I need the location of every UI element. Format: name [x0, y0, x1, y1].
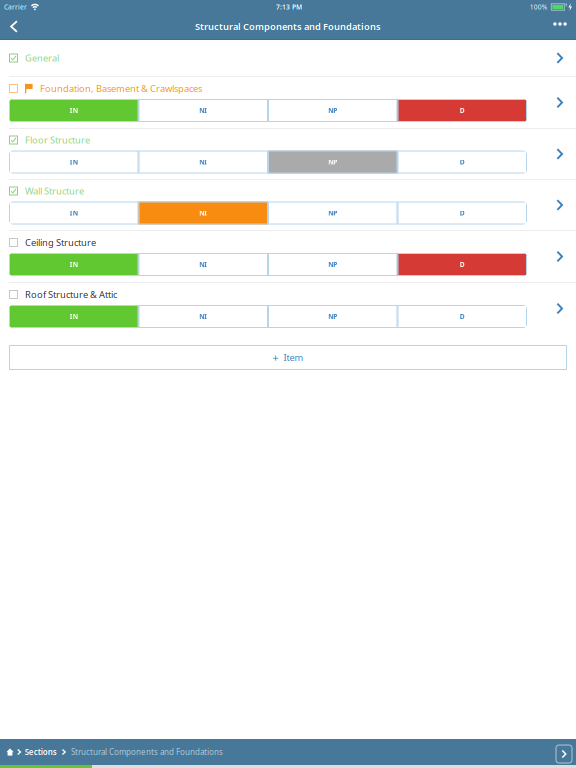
staticText: NI: [199, 209, 207, 217]
staticText: General: [25, 52, 59, 64]
button[interactable]: IN: [9, 305, 138, 328]
staticText: IN: [70, 312, 78, 321]
staticText: Foundation, Basement & Crawlspaces: [40, 82, 202, 95]
button[interactable]: General: [0, 40, 576, 76]
button[interactable]: NP: [268, 99, 397, 122]
button[interactable]: Floor Structure: [0, 129, 576, 179]
staticText: NP: [328, 209, 337, 217]
staticText: NP: [328, 158, 337, 166]
staticText: NI: [199, 106, 207, 115]
staticText: D: [460, 158, 465, 166]
staticText: Wall Structure: [25, 185, 84, 197]
button[interactable]: NP: [268, 150, 397, 173]
button[interactable]: NI: [138, 253, 268, 276]
staticText: Item: [283, 351, 303, 364]
staticText: 7:13 PM: [276, 3, 302, 11]
staticText: NP: [328, 260, 337, 269]
button[interactable]: D: [397, 150, 527, 173]
staticText: D: [460, 312, 465, 321]
staticText: Structural Components and Foundations: [71, 747, 223, 757]
staticText: Floor Structure: [25, 134, 90, 146]
button[interactable]: Wall Structure: [0, 180, 576, 230]
button[interactable]: D: [397, 201, 527, 224]
button[interactable]: Ceiling Structure: [0, 231, 576, 282]
button[interactable]: NP: [268, 201, 397, 224]
staticText: NP: [328, 106, 337, 115]
button[interactable]: NP: [268, 305, 397, 328]
staticText: Carrier: [4, 3, 27, 11]
staticText: NI: [199, 260, 207, 269]
button[interactable]: D: [397, 305, 527, 328]
staticText: D: [460, 260, 465, 269]
staticText: NI: [199, 312, 207, 321]
staticText: NI: [199, 158, 207, 166]
staticText: Sections: [25, 747, 57, 757]
button[interactable]: Home: [6, 739, 14, 765]
button[interactable]: IN: [9, 99, 138, 122]
button[interactable]: Next section: [556, 743, 572, 761]
button[interactable]: NI: [138, 150, 268, 173]
button[interactable]: More options: [547, 14, 573, 39]
staticText: D: [460, 106, 465, 115]
staticText: +: [272, 350, 278, 365]
button[interactable]: NI: [138, 305, 268, 328]
button[interactable]: NI: [138, 99, 268, 122]
button[interactable]: Roof Structure & Attic: [0, 283, 576, 334]
staticText: IN: [70, 209, 78, 217]
button[interactable]: +: [9, 345, 567, 370]
button[interactable]: D: [397, 99, 527, 122]
staticText: IN: [70, 106, 78, 115]
staticText: D: [460, 209, 465, 217]
staticText: IN: [70, 158, 78, 166]
button[interactable]: IN: [9, 253, 138, 276]
staticText: Roof Structure & Attic: [25, 288, 117, 301]
staticText: Ceiling Structure: [25, 236, 96, 249]
button[interactable]: NP: [268, 253, 397, 276]
button[interactable]: IN: [9, 201, 138, 224]
button[interactable]: IN: [9, 150, 138, 173]
staticText: Structural Components and Foundations: [195, 20, 381, 33]
staticText: NP: [328, 312, 337, 321]
staticText: IN: [70, 260, 78, 269]
button[interactable]: D: [397, 253, 527, 276]
staticText: 100%: [530, 3, 548, 11]
button[interactable]: Foundation, Basement & Crawlspaces: [0, 77, 576, 128]
button[interactable]: Back: [1, 14, 27, 39]
button[interactable]: NI: [138, 201, 268, 224]
button[interactable]: Sections: [25, 747, 57, 757]
